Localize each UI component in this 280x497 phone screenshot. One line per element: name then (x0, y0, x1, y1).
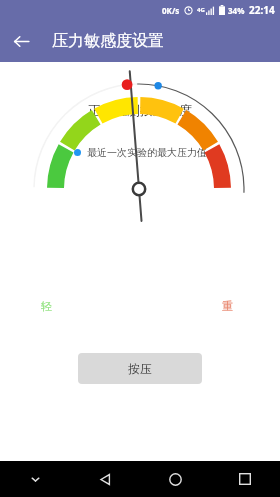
staticText: 22:14 (249, 3, 275, 17)
staticText: 按压 (128, 361, 152, 376)
staticText: 轻 (41, 299, 52, 313)
staticText: 正在检测按压力度 (88, 102, 192, 118)
staticText: 4G (197, 6, 205, 14)
button[interactable]: 按压 (78, 353, 202, 384)
staticText: 重 (222, 299, 233, 313)
staticText: 34% (228, 5, 245, 16)
staticText: 最近一次实验的最大压力值 (87, 146, 207, 159)
button[interactable]: Recents (210, 461, 280, 497)
button[interactable]: Hide keyboard (0, 461, 70, 497)
button[interactable]: Back (70, 461, 140, 497)
button[interactable]: Home (140, 461, 210, 497)
staticText: 0K/s (162, 5, 180, 16)
staticText: 压力敏感度设置 (52, 31, 164, 51)
button[interactable]: Back (0, 20, 42, 62)
